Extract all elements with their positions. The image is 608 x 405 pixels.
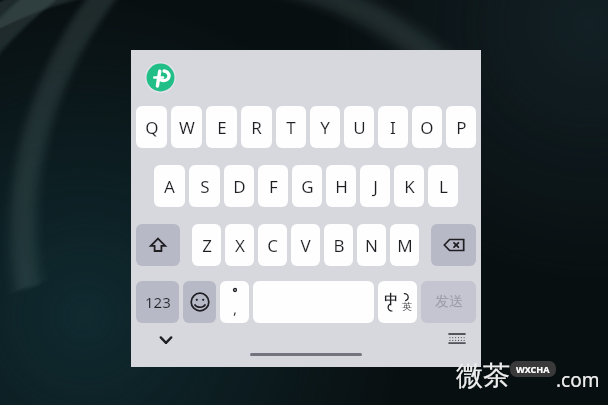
staticText: Z [202,234,212,257]
staticText: S [200,175,210,198]
button[interactable]: P [446,106,476,148]
staticText: W [179,116,195,139]
button[interactable]: , [220,281,249,323]
button[interactable]: Hide keyboard [155,329,177,351]
staticText: WXCHA [516,363,550,375]
button[interactable]: Emoji [183,281,216,323]
button[interactable]: 123 [136,281,179,323]
button[interactable]: Shift [136,224,180,266]
button[interactable]: K [394,165,424,207]
staticText: D [233,175,246,198]
staticText: Q [145,116,159,139]
button[interactable]: N [357,224,386,266]
button[interactable]: J [360,165,390,207]
staticText: H [335,175,348,198]
button[interactable]: G [292,165,322,207]
button[interactable]: M [390,224,419,266]
button[interactable]: D [224,165,254,207]
staticText: 英 [402,300,412,313]
button[interactable]: S [189,165,220,207]
staticText: K [404,175,415,198]
button[interactable]: E [206,106,237,148]
staticText: C [267,234,278,257]
button[interactable]: R [241,106,272,148]
button[interactable]: T [276,106,306,148]
staticText: F [269,175,278,198]
staticText: V [300,234,311,257]
button[interactable]: L [428,165,458,207]
button[interactable]: I [378,106,408,148]
staticText: X [235,234,245,257]
button[interactable]: H [326,165,356,207]
staticText: P [456,116,467,139]
button[interactable]: W [171,106,202,148]
staticText: T [286,116,296,139]
staticText: G [301,175,314,198]
button[interactable]: Input method [145,62,176,93]
staticText: M [397,234,413,257]
button[interactable]: Z [192,224,221,266]
button[interactable]: V [291,224,320,266]
staticText: 发送 [435,293,463,311]
button[interactable]: O [412,106,442,148]
staticText: R [251,116,262,139]
staticText: , [233,298,238,318]
button[interactable]: A [154,165,185,207]
staticText: A [164,175,175,198]
button[interactable]: C [258,224,287,266]
button[interactable]: X [225,224,254,266]
staticText: Y [320,116,330,139]
button[interactable]: B [324,224,353,266]
staticText: I [390,116,396,139]
staticText: E [217,116,227,139]
button[interactable]: F [258,165,288,207]
staticText: J [373,175,378,198]
staticText: L [439,175,448,198]
staticText: 微茶 [456,359,510,393]
button[interactable]: Y [310,106,340,148]
button[interactable]: Q [136,106,167,148]
staticText: 123 [145,292,171,312]
button[interactable]: 中 [378,281,417,323]
button[interactable]: Backspace [431,224,476,266]
staticText: U [353,116,366,139]
button[interactable]: Switch keyboard [447,328,467,348]
staticText: .com [556,367,600,393]
staticText: B [333,234,345,257]
staticText: 中 [384,291,397,307]
button[interactable]: U [344,106,374,148]
staticText: N [365,234,378,257]
staticText: O [420,116,434,139]
button[interactable]: 发送 [421,281,476,323]
